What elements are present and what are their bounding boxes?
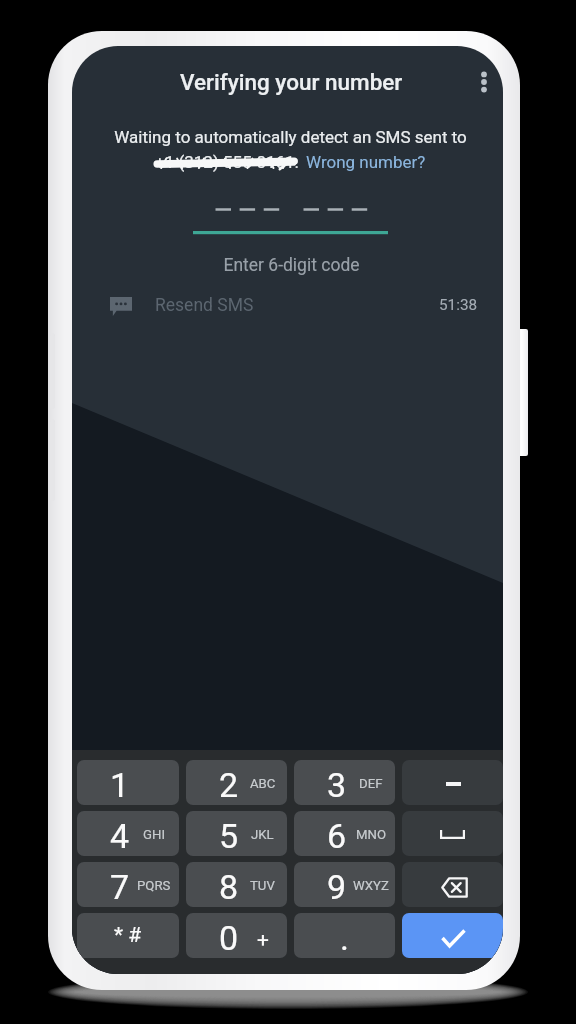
staticText: 5 [219,816,239,856]
staticText: Resend SMS [155,295,254,316]
staticText: JKL [251,827,274,842]
staticText: Waiting to automatically detect an SMS s… [75,127,503,147]
staticText: 4 [110,816,130,856]
staticText: Enter 6-digit code [76,255,503,276]
staticText: 2 [219,765,239,805]
button[interactable]: 2 [186,760,287,805]
button[interactable]: Backspace [402,862,503,907]
staticText: ABC [250,776,276,791]
button[interactable]: 9 [294,862,395,907]
button[interactable]: . [294,913,395,958]
staticText: GHI [143,827,165,842]
button[interactable]: 3 [294,760,395,805]
staticText: PQRS [137,878,171,893]
button[interactable]: Enter [402,913,503,958]
button[interactable]: Space [402,811,503,856]
staticText: TUV [250,878,275,893]
staticText: 51:38 [439,296,478,314]
staticText: Verifying your number [180,69,403,95]
staticText: 6 [327,816,347,856]
button[interactable]: More options [464,62,503,102]
staticText: MNO [356,827,386,842]
staticText: 9 [327,867,347,907]
staticText: DEF [359,776,383,791]
button[interactable]: 7 [77,862,179,907]
staticText: 8 [219,867,239,907]
button[interactable]: Wrong number? [306,152,426,172]
button[interactable]: 4 [77,811,179,856]
staticText: + [257,928,269,953]
button[interactable]: 8 [186,862,287,907]
staticText: +1 (312) 555-0161. [155,152,300,172]
button[interactable]: 0 [186,913,287,958]
button[interactable]: 6 [294,811,395,856]
button[interactable]: * # [77,913,179,958]
button[interactable]: Dash [402,760,503,805]
staticText: 3 [327,765,347,805]
staticText: 7 [110,867,130,907]
staticText: WXYZ [353,878,389,893]
button[interactable]: 5 [186,811,287,856]
staticText: * # [114,923,142,948]
staticText: 1 [110,765,130,805]
button[interactable]: Resend SMS [72,288,439,322]
button[interactable]: 1 [77,760,179,805]
staticText: 0 [219,918,239,958]
staticText: . [340,918,349,958]
